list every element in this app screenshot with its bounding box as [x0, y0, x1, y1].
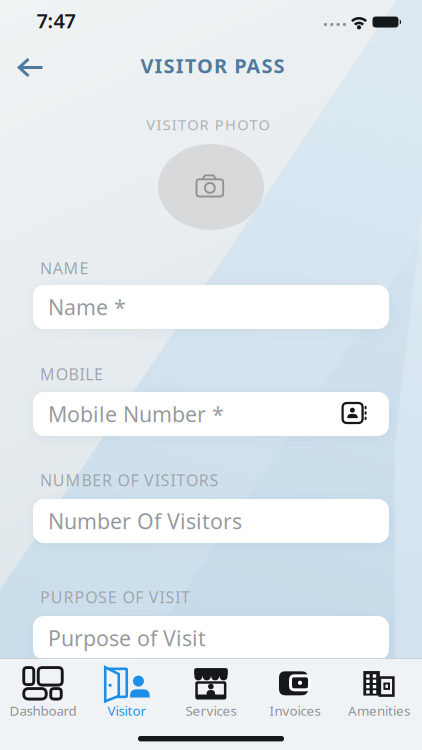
staticText: MOBILE: [40, 363, 103, 385]
button[interactable]: Purpose of Visit: [33, 616, 389, 660]
staticText: PURPOSE OF VISIT: [40, 586, 190, 608]
staticText: Visitor: [107, 702, 146, 719]
staticText: NAME: [40, 257, 88, 279]
button[interactable]: Name *: [33, 285, 389, 329]
button[interactable]: Visitor: [85, 661, 169, 727]
button[interactable]: Invoices: [253, 661, 337, 727]
button[interactable]: Dashboard: [1, 661, 85, 727]
staticText: VISITOR PHOTO: [146, 115, 275, 134]
staticText: Purpose of Visit: [48, 624, 206, 652]
button[interactable]: Add visitor photo: [158, 144, 264, 230]
staticText: Name *: [48, 293, 126, 321]
button[interactable]: Amenities: [337, 661, 421, 727]
button[interactable]: Number Of Visitors: [33, 499, 389, 543]
staticText: Services: [185, 702, 236, 719]
staticText: Mobile Number *: [48, 400, 224, 428]
button[interactable]: Back: [14, 52, 48, 82]
staticText: VISITOR PASS: [140, 52, 291, 79]
staticText: 7:47: [36, 7, 75, 34]
button[interactable]: Mobile Number *: [33, 392, 389, 436]
staticText: Number Of Visitors: [48, 507, 242, 535]
button[interactable]: Pick contact: [338, 398, 372, 428]
button[interactable]: Services: [169, 661, 253, 727]
staticText: Amenities: [348, 702, 410, 719]
staticText: Dashboard: [9, 702, 76, 719]
staticText: Invoices: [269, 702, 320, 719]
staticText: NUMBER OF VISITORS: [40, 469, 219, 491]
